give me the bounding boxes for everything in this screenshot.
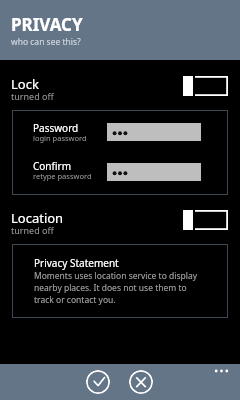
staticText: Privacy Statement [34, 256, 119, 270]
button[interactable]: Password [107, 123, 201, 141]
button[interactable]: More options [208, 364, 240, 384]
button[interactable]: Location toggle [183, 210, 228, 230]
staticText: turned off [11, 224, 54, 236]
staticText: turned off [11, 90, 54, 102]
staticText: Password [33, 121, 79, 135]
button[interactable]: Confirm [107, 163, 201, 181]
button[interactable]: Cancel [129, 370, 153, 394]
staticText: PRIVACY [11, 13, 83, 36]
staticText: retype password [33, 171, 92, 181]
staticText: login password [33, 133, 87, 143]
button[interactable]: Lock toggle [183, 76, 228, 96]
staticText: Location [11, 209, 64, 227]
staticText: who can see this? [11, 36, 81, 48]
staticText: Lock [11, 75, 39, 93]
staticText: Moments uses location service to display… [34, 270, 198, 306]
button[interactable]: Accept [86, 370, 110, 394]
staticText: Confirm [33, 159, 72, 173]
